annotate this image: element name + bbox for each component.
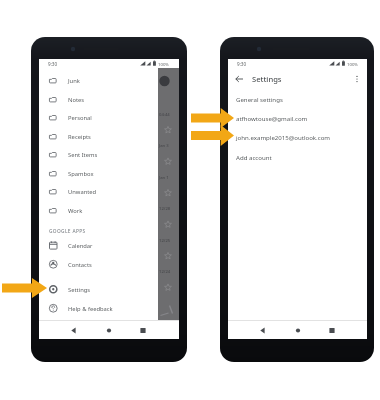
staticText: Jan 3 [159,143,169,149]
staticText: 04:44 [159,112,170,118]
button[interactable]: Notes [39,90,179,109]
staticText: Junk [68,77,80,85]
staticText: Settings [252,74,282,84]
button[interactable]: Back [66,320,82,339]
button[interactable]: Home [101,320,117,339]
staticText: Receipts [68,133,91,141]
staticText: atfhowtouse@gmail.com [236,114,308,122]
button[interactable]: Help & feedback [39,299,179,318]
staticText: Sent Items [68,151,98,159]
button[interactable]: Unwanted [39,182,179,201]
staticText: 12/25 [159,238,171,244]
button[interactable]: Back [255,320,271,339]
button[interactable]: atfhowtouse@gmail.com [228,108,367,127]
staticText: Notes [68,96,85,104]
staticText: 9:30 [48,61,58,67]
button[interactable]: Recent apps [324,320,340,339]
staticText: 100% [158,61,169,67]
button[interactable]: Back [235,74,245,84]
staticText: GOOGLE APPS [49,228,86,235]
button[interactable]: Spambox [39,164,179,183]
staticText: Settings [68,286,91,294]
button[interactable]: Add account [228,147,367,166]
button[interactable]: Work [39,201,179,220]
staticText: Spambox [68,170,94,178]
button[interactable]: Personal [39,108,179,127]
staticText: Add account [236,153,272,161]
button[interactable]: General settings [228,89,367,108]
staticText: Jan 1 [159,175,169,181]
button[interactable]: Settings [39,280,179,299]
button[interactable]: Home [290,320,306,339]
button[interactable]: More options [352,74,362,84]
staticText: john.example2015@outlook.com [236,133,331,141]
button[interactable]: Junk [39,71,179,90]
staticText: 9:30 [237,61,247,67]
staticText: 12/24 [159,269,171,275]
staticText: Contacts [68,261,92,269]
staticText: General settings [236,95,283,103]
button[interactable]: Sent Items [39,145,179,164]
staticText: Personal [68,114,92,122]
button[interactable]: Receipts [39,127,179,146]
staticText: 12/28 [159,206,171,212]
staticText: Calendar [68,242,93,250]
button[interactable]: Calendar [39,236,179,255]
button[interactable]: john.example2015@outlook.com [228,127,367,146]
button[interactable]: Recent apps [135,320,151,339]
staticText: Help & feedback [68,305,113,313]
staticText: Unwanted [68,188,97,196]
staticText: 100% [347,61,358,67]
button[interactable]: Contacts [39,255,179,274]
staticText: Work [68,207,83,215]
